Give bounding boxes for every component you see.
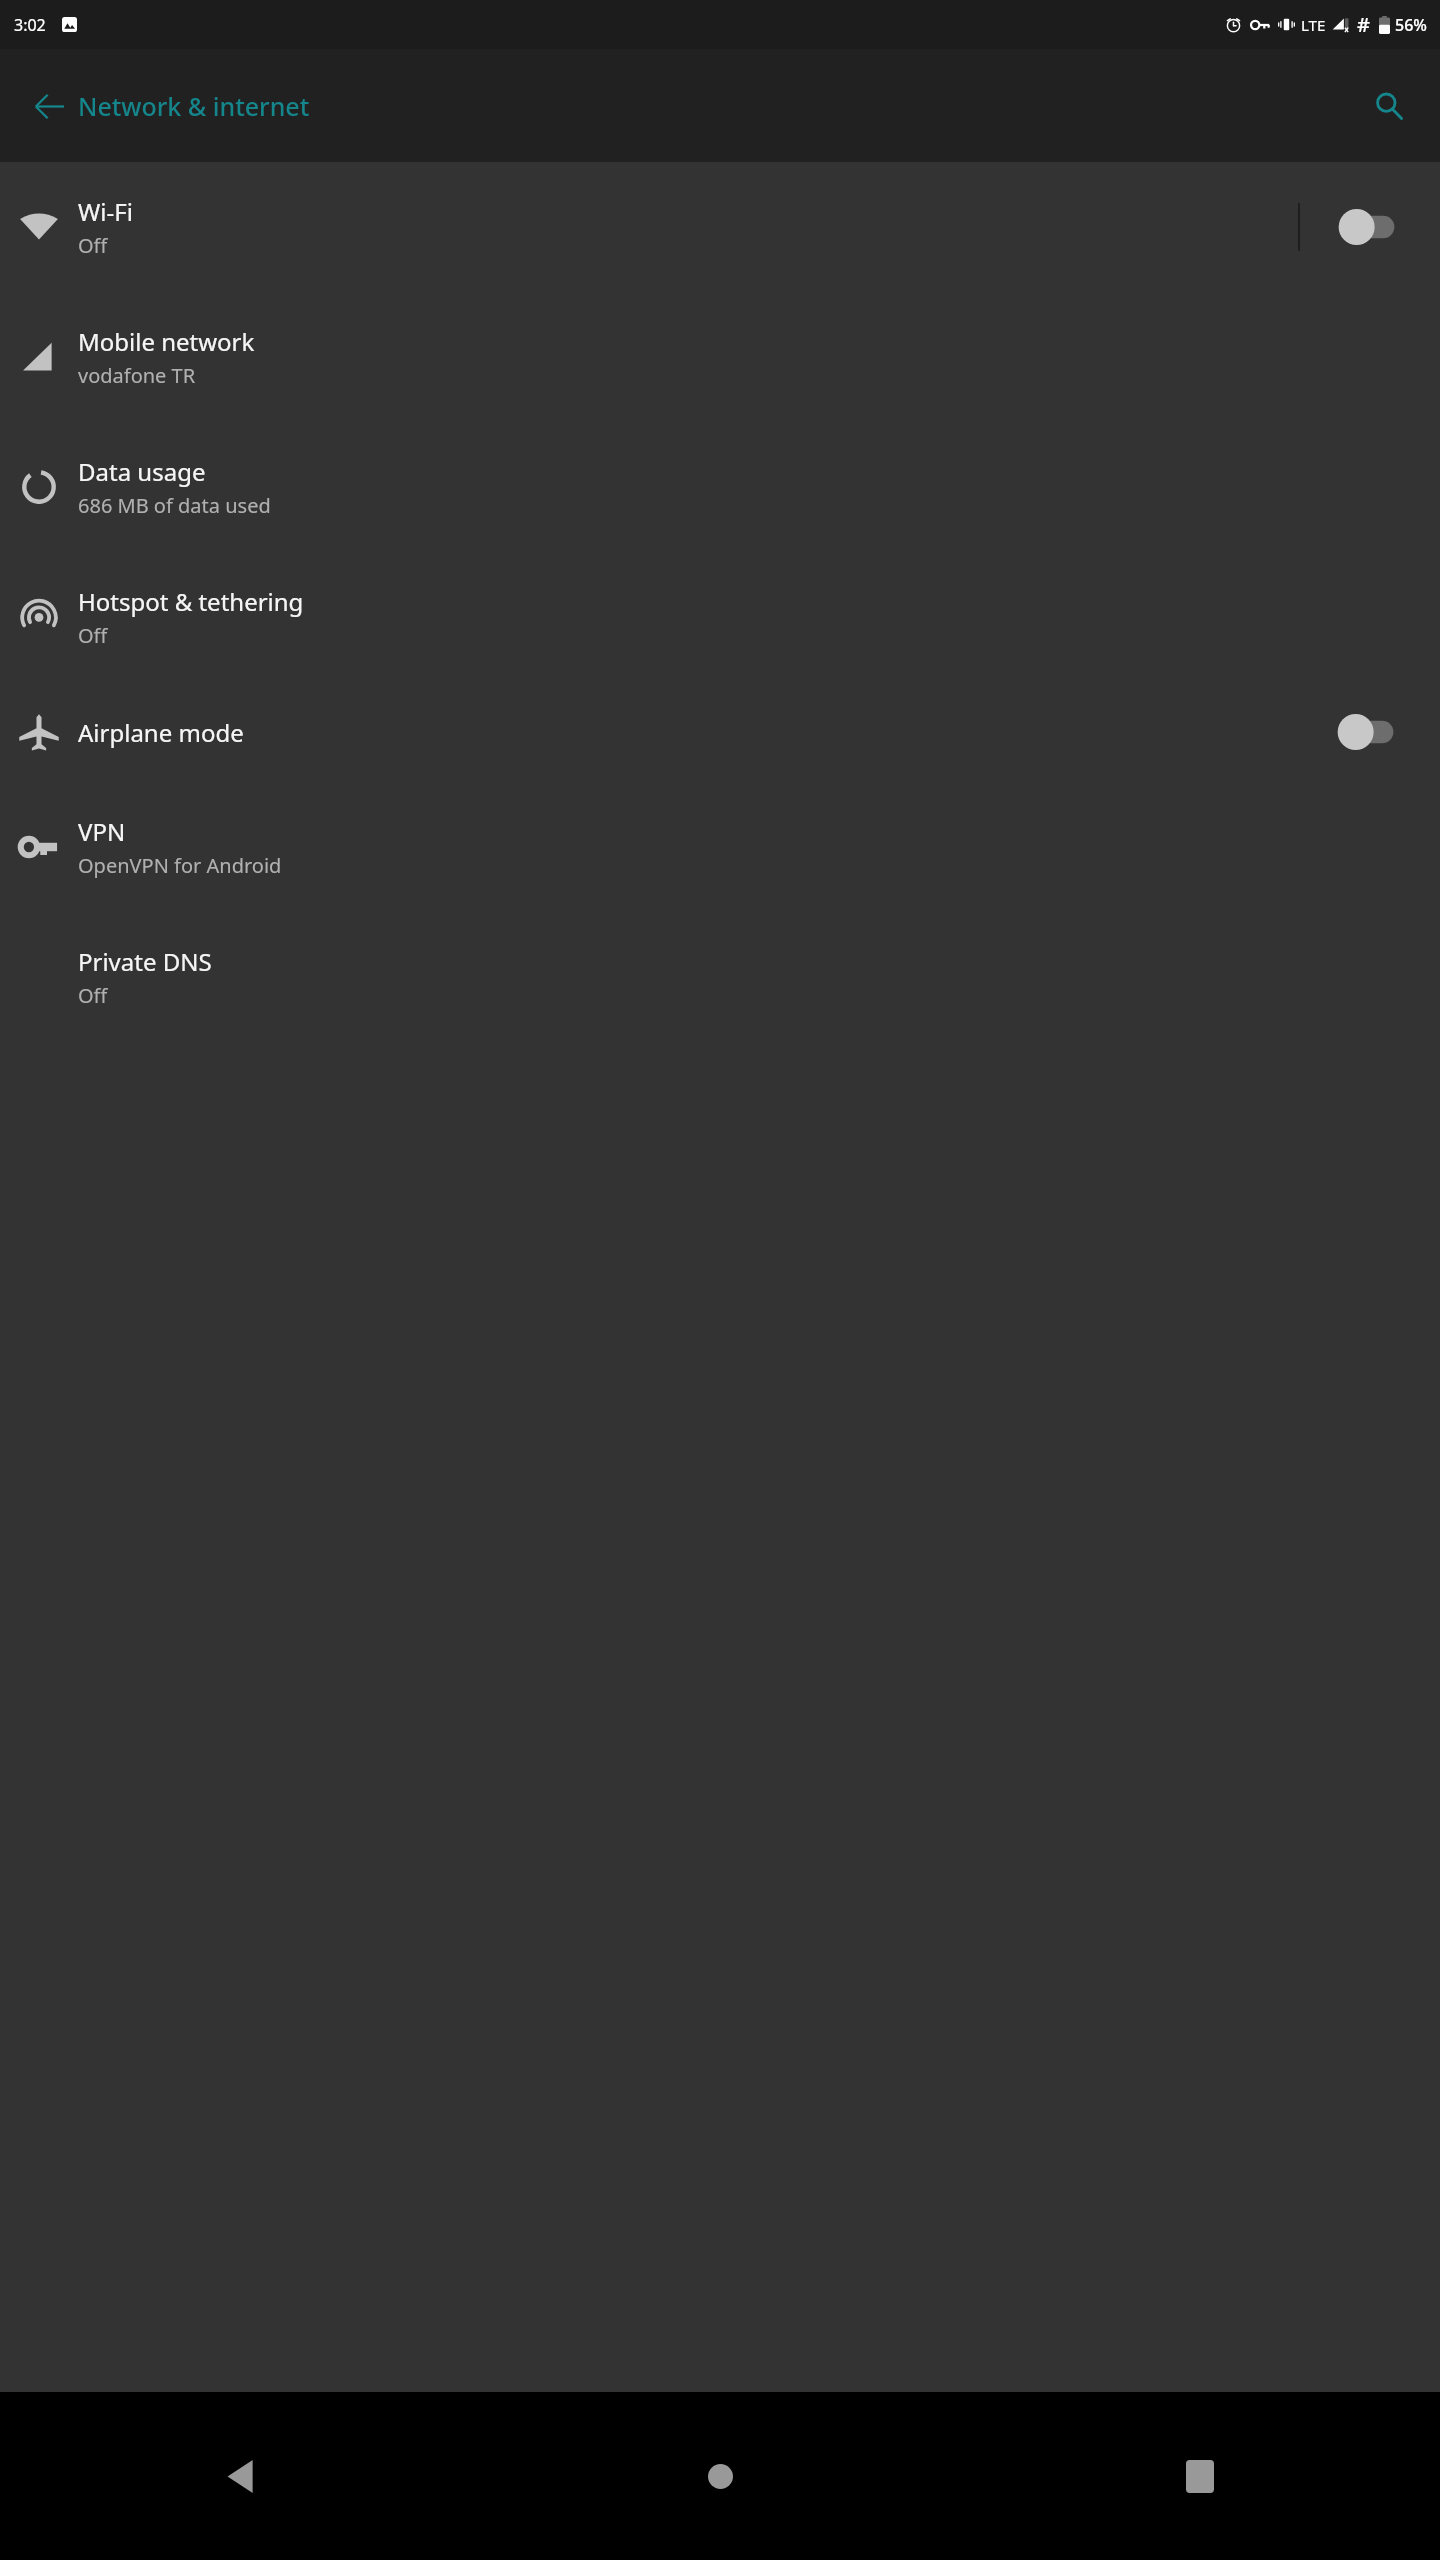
button[interactable]: Mobile network — [0, 292, 1440, 422]
staticText: VPN — [78, 815, 126, 848]
staticText: Off — [78, 232, 108, 259]
staticText: # — [1357, 11, 1370, 38]
staticText: Private DNS — [78, 945, 212, 978]
button[interactable]: Home — [480, 2392, 960, 2560]
staticText: LTE — [1301, 15, 1326, 35]
button[interactable]: Search — [1358, 75, 1420, 137]
staticText: vodafone TR — [78, 362, 196, 389]
staticText: Data usage — [78, 455, 206, 488]
staticText: Hotspot & tethering — [78, 585, 304, 618]
button[interactable]: Airplane mode switch — [1298, 682, 1440, 782]
staticText: 3:02 — [14, 14, 46, 36]
button[interactable]: Wi-Fi — [0, 162, 1440, 292]
staticText: OpenVPN for Android — [78, 852, 282, 879]
button[interactable]: Navigate up — [18, 75, 80, 137]
staticText: Network & internet — [78, 89, 310, 123]
button[interactable]: Recent apps — [960, 2392, 1440, 2560]
staticText: 56% — [1395, 14, 1427, 36]
button[interactable]: Private DNS — [0, 912, 1440, 1042]
button[interactable]: Data usage — [0, 422, 1440, 552]
button[interactable]: Wi-Fi switch — [1300, 162, 1440, 292]
staticText: Airplane mode — [78, 716, 244, 749]
button[interactable]: Hotspot & tethering — [0, 552, 1440, 682]
button[interactable]: Airplane mode — [0, 682, 1440, 782]
button[interactable]: VPN — [0, 782, 1440, 912]
staticText: Off — [78, 982, 108, 1009]
staticText: Off — [78, 622, 108, 649]
staticText: Wi-Fi — [78, 195, 133, 228]
staticText: 686 MB of data used — [78, 492, 271, 519]
button[interactable]: Back — [0, 2392, 480, 2560]
staticText: Mobile network — [78, 325, 255, 358]
